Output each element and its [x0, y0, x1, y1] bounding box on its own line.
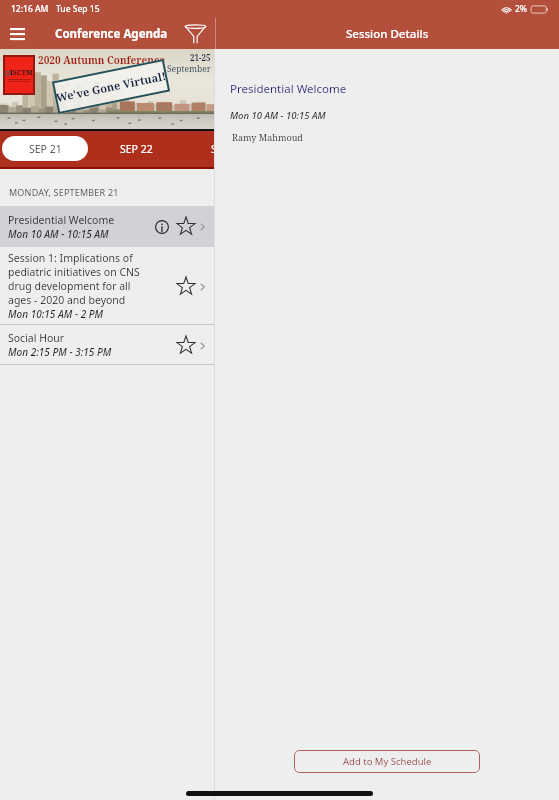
staticText: Session 1: Implications of pediatric ini… — [8, 251, 147, 307]
staticText: Social Hour — [8, 331, 65, 345]
staticText: 21-25 — [190, 52, 211, 63]
button[interactable]: SEP 22 — [98, 136, 174, 161]
button[interactable]: Menu — [0, 18, 34, 49]
button[interactable]: Info — [151, 216, 173, 238]
button[interactable]: Social Hour — [0, 325, 214, 365]
button[interactable]: Favorite — [174, 334, 197, 357]
button[interactable]: Filter — [179, 18, 211, 49]
staticText: September — [167, 63, 211, 75]
staticText: Mon 10 AM - 10:15 AM — [230, 109, 326, 122]
staticText: Mon 2:15 PM - 3:15 PM — [8, 345, 112, 359]
staticText: MONDAY, SEPTEMBER 21 — [9, 186, 119, 198]
staticText: Ramy Mahmoud — [232, 131, 303, 143]
staticText: 2% — [515, 3, 528, 15]
staticText: Conference Agenda — [55, 26, 168, 42]
staticText: SEP 21 — [29, 142, 62, 156]
staticText: We've Gone Virtual! — [55, 68, 167, 105]
staticText: S — [211, 142, 217, 156]
button[interactable]: Add to My Schedule — [294, 750, 480, 773]
button[interactable]: Favorite — [174, 275, 197, 298]
staticText: Session Details — [346, 26, 429, 42]
staticText: ISCTM — [10, 68, 33, 78]
button[interactable]: S — [211, 136, 245, 161]
staticText: Mon 10 AM - 10:15 AM — [8, 227, 109, 241]
button[interactable]: Presidential Welcome — [0, 206, 214, 247]
button[interactable]: SEP 21 — [2, 136, 88, 161]
button[interactable]: Session 1: Implications of pediatric ini… — [0, 247, 214, 325]
staticText: Presidential Welcome — [8, 213, 115, 227]
staticText: Add to My Schedule — [343, 755, 432, 768]
staticText: Tue Sep 15 — [56, 3, 100, 15]
button[interactable]: Favorite — [174, 215, 197, 238]
staticText: 12:16 AM — [11, 3, 49, 15]
staticText: Presidential Welcome — [230, 81, 347, 97]
staticText: 2020 Autumn Conference — [38, 53, 165, 67]
staticText: SEP 22 — [120, 142, 153, 156]
staticText: Mon 10:15 AM - 2 PM — [8, 307, 104, 321]
